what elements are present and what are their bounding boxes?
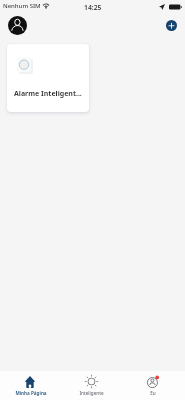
staticText: Eu (150, 390, 156, 396)
button[interactable]: Alarme Inteligent... (7, 44, 89, 112)
button[interactable]: Profile (8, 16, 27, 35)
staticText: Nenhum SIM (3, 2, 41, 10)
button[interactable]: Eu (122, 371, 183, 400)
button[interactable]: Add device (166, 20, 177, 31)
button[interactable]: Minha Página (0, 371, 61, 400)
staticText: Minha Página (15, 390, 47, 396)
button[interactable]: Inteligente (61, 371, 122, 400)
staticText: Inteligente (79, 390, 104, 396)
staticText: 14:25 (84, 3, 102, 12)
staticText: Alarme Inteligent... (14, 89, 82, 99)
